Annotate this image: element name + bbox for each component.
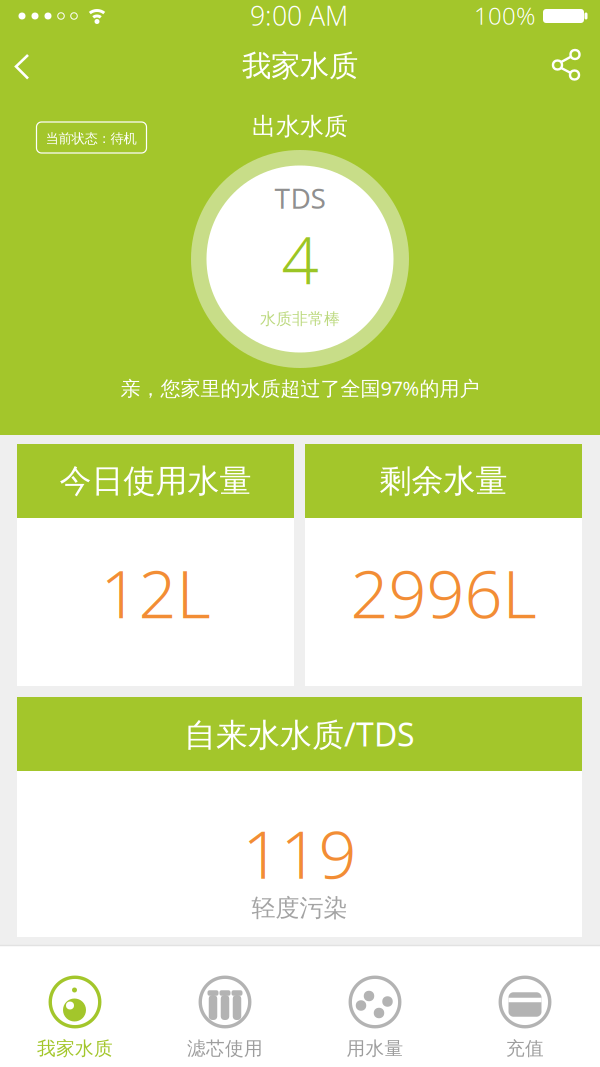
button[interactable]: 我家水质: [20, 956, 130, 1056]
staticText: 9:00 AM: [250, 0, 348, 33]
staticText: 当前状态：待机: [45, 130, 136, 147]
staticText: 自来水水质/TDS: [184, 713, 415, 755]
staticText: 用水量: [346, 1037, 403, 1060]
staticText: 12L: [100, 548, 210, 637]
button[interactable]: 充值: [470, 956, 580, 1056]
staticText: 今日使用水量: [59, 461, 251, 501]
button[interactable]: [546, 45, 586, 85]
staticText: 滤芯使用: [187, 1037, 263, 1060]
button[interactable]: 用水量: [320, 956, 430, 1056]
staticText: 4: [281, 216, 318, 302]
button[interactable]: [7, 47, 37, 87]
staticText: 轻度污染: [251, 893, 347, 923]
staticText: 亲，您家里的水质超过了全国97%的用户: [120, 375, 479, 401]
staticText: 我家水质: [242, 48, 358, 84]
staticText: 充值: [506, 1037, 544, 1060]
staticText: 2996L: [350, 548, 536, 637]
staticText: 119: [242, 809, 356, 897]
staticText: 出水水质: [252, 112, 348, 141]
staticText: 水质非常棒: [260, 309, 340, 329]
button[interactable]: 滤芯使用: [170, 956, 280, 1056]
staticText: 100%: [474, 0, 535, 31]
staticText: 剩余水量: [379, 461, 507, 501]
staticText: TDS: [274, 179, 325, 217]
staticText: 我家水质: [37, 1037, 113, 1060]
